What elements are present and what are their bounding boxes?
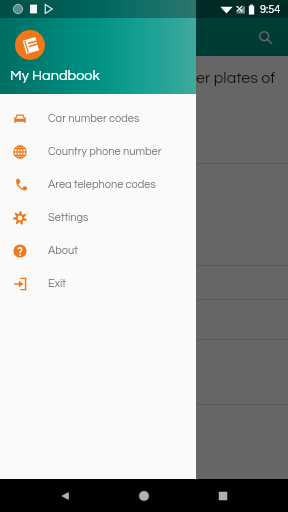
button[interactable]: Car number codes xyxy=(0,102,196,135)
staticText: Country phone number xyxy=(48,146,162,157)
button[interactable]: Back xyxy=(58,479,72,512)
button[interactable]: Exit xyxy=(0,267,196,300)
staticText: My Handbook xyxy=(10,68,100,83)
staticText: Car number plates of xyxy=(125,70,276,86)
staticText: About xyxy=(48,245,78,256)
button[interactable]: About xyxy=(0,234,196,267)
staticText: Car number codes xyxy=(48,113,140,124)
button[interactable]: Settings xyxy=(0,201,196,234)
button[interactable]: Recent apps xyxy=(216,479,230,512)
button[interactable]: Home xyxy=(137,479,151,512)
button[interactable]: Country phone number xyxy=(0,135,196,168)
button[interactable]: Area telephone codes xyxy=(0,168,196,201)
staticText: Exit xyxy=(48,278,66,289)
button[interactable] xyxy=(0,0,288,512)
staticText: Settings xyxy=(48,212,89,223)
staticText: Area telephone codes xyxy=(48,179,156,190)
button[interactable]: Search xyxy=(250,22,280,52)
staticText: 9:54 xyxy=(260,4,281,15)
